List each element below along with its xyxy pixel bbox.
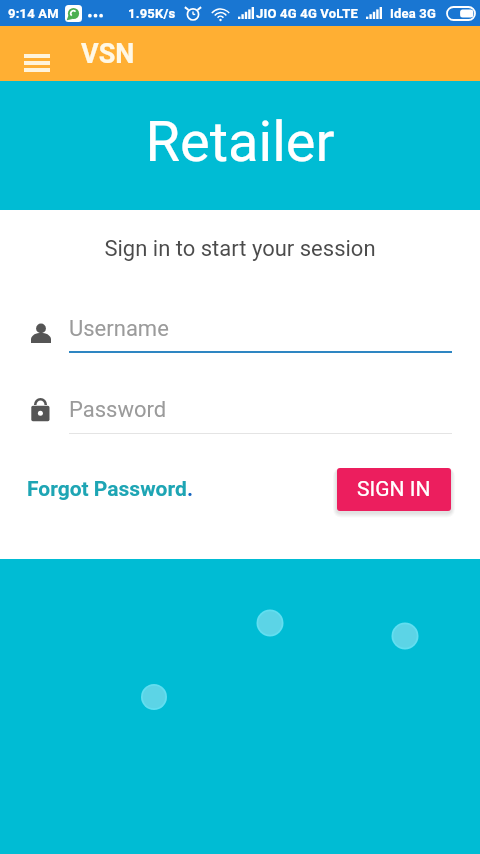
staticText: Forgot Password bbox=[27, 477, 187, 502]
staticText: SIGN IN bbox=[357, 477, 431, 502]
staticText: 1.95K/s bbox=[128, 6, 176, 21]
button[interactable]: Forgot Password bbox=[27, 477, 194, 502]
staticText: Sign in to start your session bbox=[0, 236, 480, 262]
staticText: . bbox=[187, 477, 194, 502]
staticText: Username bbox=[69, 316, 169, 342]
staticText: VSN bbox=[81, 38, 135, 70]
button[interactable]: Open navigation menu bbox=[8, 36, 66, 82]
button[interactable]: SIGN IN bbox=[337, 468, 451, 511]
staticText: Idea 3G bbox=[390, 6, 437, 21]
staticText: 9:14 AM bbox=[8, 6, 59, 21]
staticText: Password bbox=[69, 397, 167, 423]
staticText: JIO 4G 4G VoLTE bbox=[256, 6, 359, 21]
staticText: Retailer bbox=[0, 109, 480, 175]
